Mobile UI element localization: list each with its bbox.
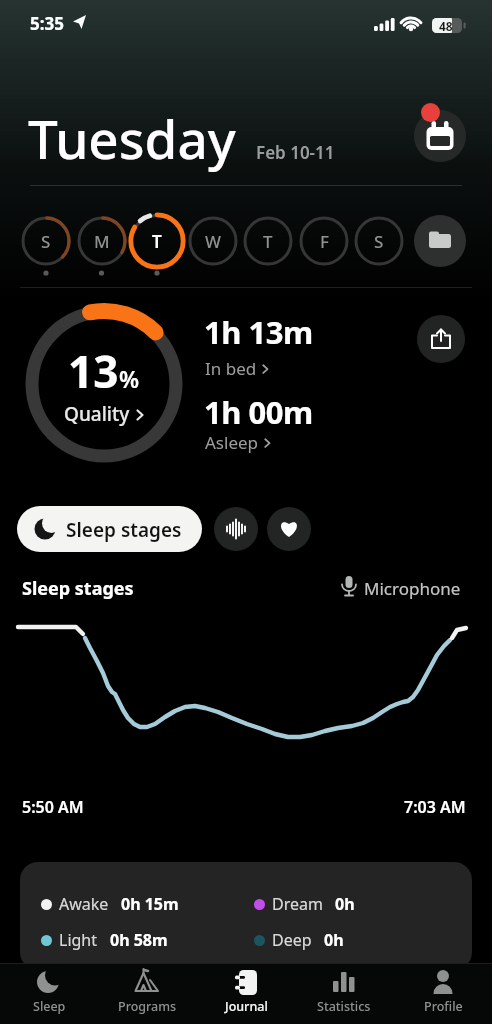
staticText: 7:03 AM [404, 796, 466, 818]
button[interactable]: F [297, 214, 351, 268]
staticText: Journal [225, 998, 268, 1015]
button[interactable]: In bed [205, 357, 269, 380]
staticText: Tuesday [28, 102, 236, 174]
staticText: In bed [205, 357, 257, 380]
staticText: 0h 15m [121, 893, 179, 915]
staticText: M [94, 230, 110, 253]
staticText: 0h 58m [110, 929, 168, 951]
button[interactable] [414, 110, 466, 162]
staticText: 0h [335, 893, 355, 915]
button[interactable]: Asleep [205, 431, 271, 454]
staticText: % [119, 363, 140, 394]
staticText: Deep [272, 929, 312, 951]
staticText: Sleep [33, 998, 66, 1015]
button[interactable] [417, 315, 465, 363]
staticText: Light [59, 929, 98, 951]
staticText: 1h 00m [204, 391, 313, 433]
button[interactable]: Sleep [0, 966, 98, 1024]
staticText: Awake [59, 893, 109, 915]
staticText: Programs [118, 998, 177, 1015]
button[interactable]: Profile [394, 966, 492, 1024]
staticText: 48 [439, 18, 453, 34]
staticText: T [263, 230, 273, 253]
staticText: 5:35 [30, 12, 64, 35]
staticText: Sleep stages [22, 576, 134, 601]
staticText: Asleep [205, 431, 259, 454]
button[interactable]: Sleep stages [17, 506, 202, 552]
button[interactable] [267, 507, 311, 551]
button[interactable]: S [19, 214, 73, 268]
button[interactable]: 13 [24, 304, 184, 464]
staticText: S [41, 230, 51, 253]
staticText: Dream [272, 893, 323, 915]
button[interactable]: S [352, 214, 406, 268]
staticText: F [320, 230, 329, 253]
staticText: Microphone [364, 577, 461, 600]
staticText: Feb 10-11 [256, 141, 335, 164]
button[interactable]: Journal [197, 966, 295, 1024]
button[interactable]: T [241, 214, 295, 268]
staticText: S [374, 230, 384, 253]
staticText: T [152, 230, 162, 253]
staticText: 1h 13m [204, 311, 313, 353]
button[interactable]: Programs [98, 966, 196, 1024]
staticText: W [205, 230, 221, 253]
staticText: Statistics [317, 998, 371, 1015]
staticText: Profile [424, 998, 463, 1015]
staticText: Quality [64, 401, 130, 427]
staticText: 0h [324, 929, 344, 951]
button[interactable]: W [186, 214, 240, 268]
staticText: 13 [68, 341, 119, 401]
staticText: 5:50 AM [22, 796, 84, 818]
button[interactable]: Statistics [295, 966, 393, 1024]
button[interactable]: M [75, 214, 129, 268]
button[interactable] [214, 507, 258, 551]
button[interactable] [414, 215, 466, 267]
staticText: Sleep stages [66, 517, 182, 543]
button[interactable]: T [130, 214, 184, 268]
